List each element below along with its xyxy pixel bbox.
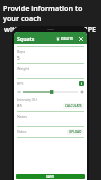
- staticText: DELETE: [61, 36, 74, 41]
- button[interactable]: Close: [77, 35, 84, 42]
- button[interactable]: Reps: [17, 47, 84, 64]
- button[interactable]: Notes: [17, 112, 84, 127]
- staticText: CALCULATE: [65, 104, 82, 108]
- staticText: Intensity (%): [17, 97, 37, 102]
- staticText: with notes, video, and RPE: [4, 24, 97, 34]
- staticText: Provide information to your coach: [3, 3, 98, 23]
- staticText: RPE: [17, 81, 24, 86]
- staticText: Reps: [17, 49, 26, 54]
- button[interactable]: RPE slider: [17, 87, 84, 96]
- staticText: 85: [17, 103, 22, 109]
- button[interactable]: RPE info: [79, 81, 84, 86]
- button[interactable]: Intensity (%): [17, 97, 84, 109]
- button[interactable]: SAVE: [16, 174, 85, 179]
- staticText: Squats: [17, 35, 35, 42]
- button[interactable]: RPE: [17, 79, 84, 87]
- staticText: i: [81, 82, 82, 86]
- button[interactable]: Weight: [17, 64, 84, 79]
- button[interactable]: CALCULATE: [63, 103, 84, 109]
- staticText: 5: [17, 55, 20, 61]
- staticText: Notes: [17, 114, 27, 119]
- button[interactable]: DELETE: [55, 35, 75, 42]
- button[interactable]: UPLOAD: [67, 129, 84, 135]
- staticText: Video: [17, 129, 27, 134]
- button[interactable]: Video: [17, 127, 84, 136]
- staticText: SAVE: [46, 174, 55, 179]
- staticText: UPLOAD: [69, 130, 82, 134]
- staticText: Weight: [17, 66, 29, 71]
